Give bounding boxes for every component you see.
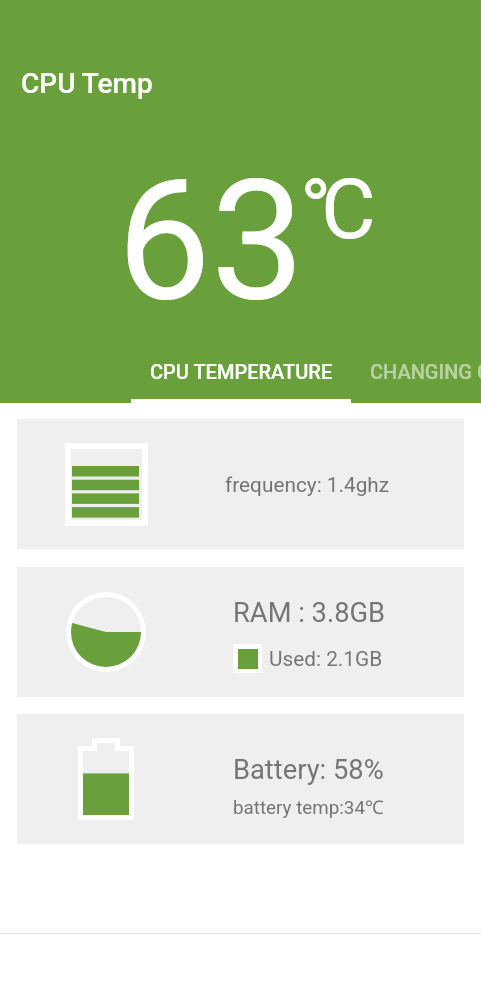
staticText: 63 — [117, 143, 305, 339]
staticText: ° — [300, 160, 332, 258]
staticText: battery temp:34℃ — [233, 794, 384, 820]
staticText: C — [321, 160, 376, 258]
staticText: CPU TEMPERATURE — [150, 360, 333, 383]
other: RAM usage — [66, 592, 146, 672]
button[interactable]: CPU frequency — [17, 419, 464, 549]
staticText: frequency: 1.4ghz — [225, 473, 390, 497]
staticText: CHANGING CURVE — [370, 360, 481, 383]
other: CPU frequency — [65, 443, 148, 526]
other: Battery level — [78, 738, 134, 820]
button[interactable]: CHANGING CURVE — [351, 345, 481, 397]
button[interactable]: CPU TEMPERATURE — [131, 345, 351, 397]
staticText: RAM : 3.8GB — [233, 597, 386, 629]
staticText: Battery: 58% — [233, 754, 384, 786]
staticText: CPU Temp — [21, 67, 153, 100]
staticText: Used: 2.1GB — [269, 647, 383, 671]
button[interactable]: Battery level — [17, 714, 464, 844]
button[interactable]: RAM usage — [17, 567, 464, 697]
